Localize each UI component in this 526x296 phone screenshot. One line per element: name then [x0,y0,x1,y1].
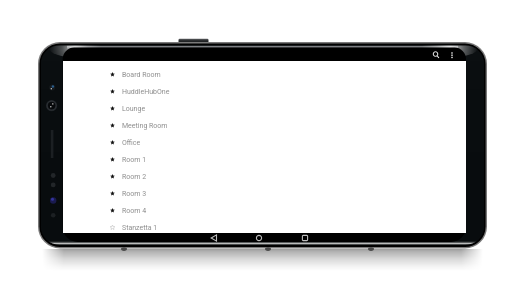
button[interactable]: Office [63,134,466,151]
staticText: Room 1 [122,156,147,164]
staticText: Room 4 [122,207,147,215]
button[interactable]: Room 4 [63,202,466,219]
button[interactable]: Recents [299,233,311,243]
button[interactable]: Room 3 [63,185,466,202]
staticText: Board Room [122,71,161,79]
button[interactable]: Stanzetta 1 [63,219,466,236]
staticText: Room 3 [122,190,147,198]
staticText: Meeting Room [122,122,168,130]
staticText: Lounge [122,105,146,113]
staticText: Stanzetta 1 [122,224,158,232]
button[interactable]: Board Room [63,66,466,83]
button[interactable]: Lounge [63,100,466,117]
button[interactable]: HuddleHubOne [63,83,466,100]
button[interactable]: Back [208,233,220,243]
staticText: Office [122,139,141,147]
button[interactable]: Meeting Room [63,117,466,134]
staticText: HuddleHubOne [122,88,170,96]
button[interactable]: Search [428,48,444,61]
button[interactable]: Home [253,233,265,243]
staticText: Room 2 [122,173,147,181]
button[interactable]: More options [444,48,459,61]
button[interactable]: Room 1 [63,151,466,168]
button[interactable]: Room 2 [63,168,466,185]
